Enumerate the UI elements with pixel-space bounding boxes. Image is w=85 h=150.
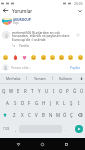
button[interactable]: A [3, 98, 11, 108]
staticText: B [42, 112, 45, 118]
staticText: G [35, 100, 39, 106]
button[interactable]: Tamam [27, 73, 52, 83]
staticText: 1s [12, 44, 16, 48]
button[interactable]: Emoji [20, 53, 28, 61]
staticText: U [45, 88, 49, 94]
staticText: Paylas [70, 65, 81, 69]
button[interactable]: Back [13, 139, 24, 150]
button[interactable]: Emoji [39, 53, 47, 61]
staticText: K [56, 100, 59, 106]
staticText: Ö [63, 112, 67, 118]
button[interactable]: Ç [68, 110, 75, 120]
staticText: Q [2, 88, 6, 94]
button[interactable]: Z [10, 110, 18, 120]
staticText: Kullanin [59, 76, 72, 81]
staticText: Yorumlar [12, 8, 33, 14]
staticText: L [63, 100, 66, 106]
button[interactable]: I [75, 98, 82, 108]
button[interactable]: L [61, 98, 68, 108]
button[interactable]: ?123 [1, 124, 11, 134]
staticText: Ü [80, 88, 84, 94]
button[interactable]: Emoji [48, 53, 56, 61]
button[interactable]: Send [75, 125, 83, 133]
button[interactable]: Backspace [76, 111, 84, 119]
button[interactable]: Emoji [66, 53, 74, 61]
button[interactable]: Ü [78, 86, 85, 96]
button[interactable]: U [43, 86, 50, 96]
button[interactable]: O [57, 86, 64, 96]
button[interactable]: W [8, 86, 15, 96]
button[interactable]: Home [37, 139, 48, 150]
button[interactable]: Like [74, 31, 82, 39]
staticText: 20:05 [74, 1, 83, 6]
staticText: E [17, 88, 20, 94]
staticText: I [53, 88, 55, 94]
button[interactable]: Back [0, 6, 10, 15]
staticText: mehmet666 Bunlardan en cok hosandan, etk… [12, 30, 70, 42]
button[interactable]: Recents [61, 139, 72, 150]
button[interactable]: Emoji [1, 53, 9, 61]
staticText: X [21, 112, 24, 118]
staticText: P [66, 88, 69, 94]
button[interactable]: Y [36, 86, 43, 96]
button[interactable]: S [11, 98, 19, 108]
button[interactable]: Yanitla [19, 44, 29, 48]
staticText: Z [13, 112, 16, 118]
staticText: Yorum ekle... [11, 65, 32, 69]
button[interactable]: N [47, 110, 54, 120]
staticText: Ç [70, 112, 73, 118]
button[interactable]: Kullanin [53, 73, 78, 83]
button[interactable]: T [29, 86, 36, 96]
staticText: Ğ [73, 88, 77, 94]
button[interactable]: V [33, 110, 40, 120]
staticText: D [21, 100, 25, 106]
button[interactable]: Emoji [29, 53, 37, 61]
staticText: W [9, 88, 14, 94]
staticText: , [15, 127, 17, 132]
staticText: Yanitla [19, 44, 29, 48]
button[interactable]: Emoji [57, 53, 65, 61]
button[interactable]: K [54, 98, 61, 108]
button[interactable]: Q [0, 86, 8, 96]
button[interactable]: I [50, 86, 57, 96]
button[interactable]: P [64, 86, 71, 96]
button[interactable]: H [40, 98, 47, 108]
button[interactable]: B [40, 110, 47, 120]
button[interactable]: F [26, 98, 33, 108]
button[interactable]: Ş [68, 98, 75, 108]
staticText: F [28, 100, 31, 106]
staticText: Tamam [34, 76, 46, 81]
staticText: N [49, 112, 53, 118]
staticText: . [65, 127, 67, 132]
button[interactable]: Shift [1, 111, 9, 119]
button[interactable]: D [19, 98, 26, 108]
staticText: Top [13, 21, 19, 25]
staticText: T [31, 88, 34, 94]
button[interactable]: Comma [13, 126, 19, 132]
button[interactable]: Ğ [71, 86, 78, 96]
staticText: Ş [70, 100, 73, 106]
button[interactable]: R [22, 86, 29, 96]
button[interactable]: Emoji [11, 53, 19, 61]
button[interactable]: G [33, 98, 40, 108]
button[interactable]: C [26, 110, 33, 120]
button[interactable]: E [15, 86, 22, 96]
staticText: C [28, 112, 31, 118]
button[interactable]: M [54, 110, 61, 120]
button[interactable]: X [18, 110, 26, 120]
button[interactable]: J [47, 98, 54, 108]
button[interactable]: Period [63, 126, 69, 132]
staticText: H [42, 100, 46, 106]
staticText: V [35, 112, 38, 118]
button[interactable]: Emoji [76, 53, 84, 61]
button[interactable]: Ö [61, 110, 68, 120]
button[interactable]: Collapse [75, 6, 84, 15]
button[interactable]: Merhaba [0, 73, 26, 83]
staticText: Y [38, 88, 41, 94]
staticText: O [59, 88, 63, 94]
button[interactable]: Voice input [78, 73, 85, 83]
staticText: R [24, 88, 27, 94]
button[interactable]: Paylas [70, 65, 81, 69]
staticText: J [50, 100, 52, 106]
